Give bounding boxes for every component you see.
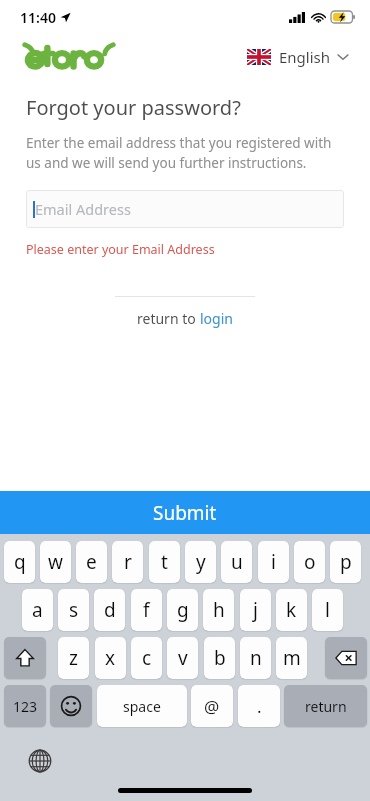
staticText: o (304, 549, 316, 575)
staticText: English (279, 47, 331, 67)
staticText: l (325, 597, 330, 623)
button[interactable]: u (221, 541, 252, 583)
button[interactable]: x (95, 637, 126, 679)
button[interactable]: p (330, 541, 361, 583)
button[interactable]: q (4, 541, 35, 583)
staticText: g (177, 597, 189, 623)
staticText: r (124, 549, 132, 575)
button[interactable]: r (112, 541, 143, 583)
staticText: 11:40 (20, 8, 56, 27)
staticText: Enter the email address that you registe… (26, 134, 344, 172)
staticText: p (340, 549, 352, 575)
staticText: space (123, 697, 161, 716)
staticText: n (250, 645, 262, 671)
button[interactable]: o (294, 541, 325, 583)
staticText: w (48, 549, 63, 575)
button[interactable]: @ (191, 685, 233, 727)
button[interactable]: eToro (22, 42, 116, 72)
staticText: x (105, 645, 116, 671)
staticText: return (305, 697, 347, 716)
staticText: return to (137, 309, 200, 328)
button[interactable]: login (200, 309, 233, 328)
button[interactable]: Backspace (325, 637, 367, 679)
button[interactable]: Email Address (26, 190, 344, 228)
staticText: v (178, 645, 188, 671)
button[interactable]: f (131, 589, 162, 631)
button[interactable]: Emoji (50, 685, 92, 727)
button[interactable]: space (97, 685, 187, 727)
staticText: c (142, 645, 152, 671)
staticText: e (86, 549, 97, 575)
button[interactable]: z (58, 637, 89, 679)
button[interactable]: g (167, 589, 198, 631)
staticText: @ (204, 695, 220, 718)
button[interactable]: t (149, 541, 180, 583)
button[interactable]: w (40, 541, 71, 583)
button[interactable]: a (22, 589, 53, 631)
button[interactable]: i (258, 541, 289, 583)
staticText: t (161, 549, 168, 575)
staticText: Forgot your password? (26, 94, 241, 121)
button[interactable]: Shift (4, 637, 46, 679)
staticText: Please enter your Email Address (26, 241, 215, 258)
staticText: s (69, 597, 79, 623)
button[interactable]: . (238, 685, 280, 727)
staticText: k (286, 597, 297, 623)
button[interactable]: Change keyboard language (28, 749, 52, 773)
staticText: . (257, 695, 262, 718)
button[interactable]: v (167, 637, 198, 679)
staticText: j (253, 597, 258, 623)
staticText: y (196, 549, 206, 575)
staticText: b (214, 645, 226, 671)
staticText: q (14, 549, 26, 575)
button[interactable]: s (58, 589, 89, 631)
staticText: f (143, 597, 150, 623)
button[interactable]: y (185, 541, 216, 583)
staticText: Email Address (35, 199, 131, 219)
button[interactable]: n (240, 637, 271, 679)
staticText: a (32, 597, 43, 623)
staticText: d (104, 597, 116, 623)
button[interactable]: e (76, 541, 107, 583)
button[interactable]: return (284, 685, 367, 727)
button[interactable]: 123 (4, 685, 46, 727)
button[interactable]: h (203, 589, 234, 631)
staticText: m (283, 645, 301, 671)
button[interactable]: c (131, 637, 162, 679)
staticText: i (271, 549, 276, 575)
staticText: Submit (153, 500, 217, 526)
button[interactable]: English (245, 42, 350, 72)
button[interactable]: Submit (0, 491, 370, 534)
staticText: u (231, 549, 243, 575)
button[interactable]: j (240, 589, 271, 631)
staticText: 123 (13, 697, 38, 716)
staticText: login (200, 309, 233, 328)
staticText: z (69, 645, 78, 671)
button[interactable]: m (276, 637, 307, 679)
button[interactable]: d (94, 589, 125, 631)
button[interactable]: k (276, 589, 307, 631)
staticText: h (213, 597, 225, 623)
button[interactable]: b (204, 637, 235, 679)
button[interactable]: l (312, 589, 343, 631)
